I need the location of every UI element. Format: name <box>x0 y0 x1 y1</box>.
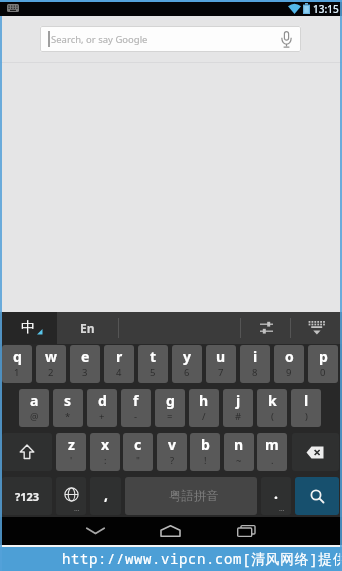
button[interactable] <box>226 517 266 546</box>
button[interactable]: … <box>56 477 86 515</box>
staticText: . <box>271 454 274 467</box>
staticText: … <box>74 504 80 514</box>
staticText: i <box>253 347 258 366</box>
staticText: g <box>166 391 175 410</box>
staticText: v <box>168 435 176 454</box>
button[interactable]: j <box>223 389 253 427</box>
button[interactable] <box>245 312 285 344</box>
button[interactable]: v <box>157 433 187 471</box>
staticText: 5 <box>150 366 156 379</box>
button[interactable] <box>292 433 339 471</box>
button[interactable]: q <box>2 345 32 383</box>
staticText: f <box>133 391 139 410</box>
staticText: En <box>80 320 95 336</box>
staticText: ~ <box>236 454 242 467</box>
staticText: j <box>236 391 241 410</box>
button[interactable]: En <box>57 312 117 344</box>
button[interactable]: z <box>56 433 86 471</box>
staticText: = <box>167 410 173 423</box>
staticText: 9 <box>286 366 292 379</box>
button[interactable]: 中 <box>2 312 57 344</box>
staticText: ? <box>170 454 175 467</box>
button[interactable] <box>295 312 340 344</box>
staticText: ?123 <box>15 489 40 504</box>
staticText: , <box>104 485 108 504</box>
staticText: 8 <box>252 366 258 379</box>
button[interactable]: l <box>291 389 321 427</box>
staticText: s <box>64 391 72 410</box>
staticText: e <box>81 347 90 366</box>
button[interactable]: m <box>257 433 287 471</box>
staticText: + <box>99 410 105 423</box>
staticText: b <box>201 435 210 454</box>
staticText: 1 <box>14 366 20 379</box>
staticText: q <box>13 347 22 366</box>
staticText: - <box>134 410 138 423</box>
staticText: 粤語拼音 <box>169 488 219 504</box>
staticText: 4 <box>116 366 122 379</box>
button[interactable]: k <box>257 389 287 427</box>
staticText: r <box>116 347 123 366</box>
button[interactable]: w <box>36 345 66 383</box>
staticText: " <box>136 454 140 467</box>
staticText: d <box>98 391 107 410</box>
staticText: … <box>279 504 285 514</box>
staticText: 7 <box>218 366 224 379</box>
staticText: z <box>68 435 75 454</box>
staticText: : <box>104 454 107 467</box>
staticText: 0 <box>320 366 326 379</box>
button[interactable] <box>2 433 52 471</box>
staticText: t <box>150 347 157 366</box>
button[interactable]: d <box>87 389 117 427</box>
staticText: w <box>45 347 57 366</box>
staticText: m <box>265 435 279 454</box>
button[interactable]: g <box>155 389 185 427</box>
button[interactable]: b <box>190 433 220 471</box>
staticText: ( <box>271 410 274 423</box>
staticText: n <box>234 435 244 454</box>
button[interactable] <box>76 517 116 546</box>
staticText: # <box>235 410 242 423</box>
button[interactable]: r <box>104 345 134 383</box>
button[interactable]: Search, or say Google <box>40 26 301 52</box>
button[interactable]: n <box>224 433 254 471</box>
staticText: y <box>183 347 191 366</box>
button[interactable]: 粤語拼音 <box>125 477 257 515</box>
staticText: k <box>268 391 277 410</box>
staticText: / <box>202 410 206 423</box>
staticText: o <box>285 347 294 366</box>
button[interactable]: h <box>189 389 219 427</box>
button[interactable]: p <box>308 345 338 383</box>
staticText: a <box>30 391 39 410</box>
staticText: l <box>304 391 309 410</box>
staticText: ) <box>305 410 308 423</box>
button[interactable]: u <box>206 345 236 383</box>
button[interactable]: e <box>70 345 100 383</box>
button[interactable] <box>151 517 191 546</box>
button[interactable]: o <box>274 345 304 383</box>
staticText: 2 <box>48 366 54 379</box>
staticText: 13:15 <box>313 2 339 16</box>
staticText: 3 <box>82 366 88 379</box>
staticText: * <box>65 410 71 423</box>
button[interactable]: f <box>121 389 151 427</box>
button[interactable] <box>295 477 339 515</box>
button[interactable]: s <box>53 389 83 427</box>
button[interactable]: i <box>240 345 270 383</box>
button[interactable]: ?123 <box>2 477 52 515</box>
button[interactable]: c <box>123 433 153 471</box>
button[interactable]: t <box>138 345 168 383</box>
staticText: c <box>134 435 142 454</box>
button[interactable]: y <box>172 345 202 383</box>
staticText: Search, or say Google <box>51 33 148 46</box>
staticText: x <box>101 435 110 454</box>
staticText: @ <box>30 410 39 423</box>
staticText: 6 <box>184 366 190 379</box>
button[interactable]: a <box>19 389 49 427</box>
button[interactable]: . <box>261 477 291 515</box>
staticText: u <box>216 347 226 366</box>
button[interactable]: x <box>90 433 120 471</box>
staticText: 中 <box>21 319 35 337</box>
button[interactable]: , <box>90 477 121 515</box>
staticText: http://www.vipcn.com[清风网络]提供 <box>62 549 342 568</box>
